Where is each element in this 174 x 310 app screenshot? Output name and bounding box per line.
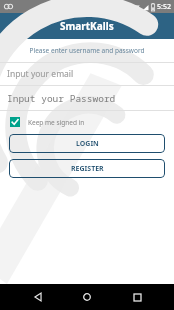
button[interactable]: Input your email: [0, 63, 174, 85]
staticText: Input your Password: [7, 92, 116, 105]
button[interactable]: LOGIN: [9, 134, 165, 153]
staticText: LOGIN: [76, 139, 99, 149]
button[interactable]: Keep me signed in: [0, 114, 174, 130]
staticText: REGISTER: [71, 164, 104, 174]
button[interactable]: Input your Password: [0, 86, 174, 110]
button[interactable]: REGISTER: [9, 159, 165, 178]
button[interactable]: Recent apps: [125, 285, 149, 309]
staticText: Input your email: [7, 68, 74, 80]
staticText: SmartKalls: [60, 19, 114, 33]
button[interactable]: Home: [75, 285, 99, 309]
staticText: Please enter username and password: [0, 46, 174, 55]
button[interactable]: Back: [26, 285, 50, 309]
staticText: Keep me signed in: [28, 118, 85, 127]
staticText: 5:52: [157, 2, 171, 12]
